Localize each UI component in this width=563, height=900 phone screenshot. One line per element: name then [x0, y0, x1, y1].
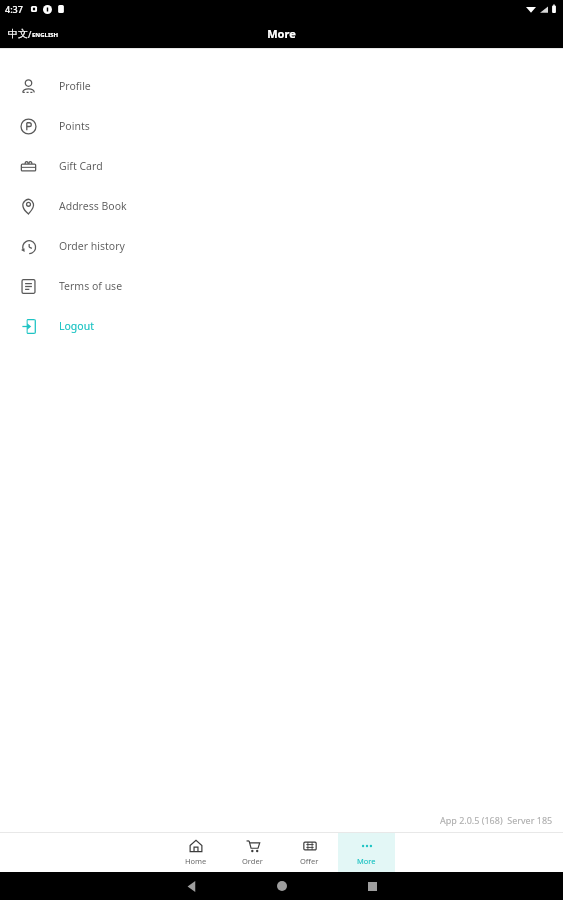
staticText: More	[357, 856, 376, 866]
button[interactable]: Recent apps	[327, 872, 417, 900]
staticText: More	[267, 26, 296, 41]
button[interactable]: Offer	[281, 833, 338, 872]
staticText: Points	[59, 119, 90, 133]
staticText: Address Book	[59, 199, 127, 213]
staticText: Logout	[59, 319, 94, 333]
button[interactable]: Order history	[0, 226, 563, 266]
staticText: Gift Card	[59, 159, 103, 173]
staticText: /	[28, 28, 32, 40]
button[interactable]: Profile	[0, 66, 563, 106]
button[interactable]: More	[338, 833, 395, 872]
staticText: App 2.0.5 (168) Server 185	[440, 814, 553, 826]
staticText: Order history	[59, 239, 125, 253]
button[interactable]: Home	[168, 833, 224, 872]
staticText: Order	[242, 856, 263, 866]
staticText: Profile	[59, 79, 91, 93]
staticText: 中文	[8, 27, 28, 40]
button[interactable]: Gift Card	[0, 146, 563, 186]
button[interactable]: 中文	[6, 25, 61, 42]
staticText: ENGLISH	[32, 31, 59, 39]
button[interactable]: Back	[147, 872, 237, 900]
staticText: Offer	[300, 856, 319, 866]
staticText: Home	[185, 856, 207, 866]
button[interactable]: Logout	[0, 306, 563, 346]
button[interactable]: Address Book	[0, 186, 563, 226]
button[interactable]: Points	[0, 106, 563, 146]
button[interactable]: Home	[237, 872, 327, 900]
staticText: 4:37	[5, 3, 23, 15]
button[interactable]: Order	[224, 833, 281, 872]
staticText: Terms of use	[59, 279, 123, 293]
button[interactable]: Terms of use	[0, 266, 563, 306]
